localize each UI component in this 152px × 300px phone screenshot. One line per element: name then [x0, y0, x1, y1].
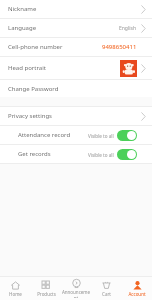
staticText: Announcement — [61, 289, 91, 298]
button[interactable]: Account — [122, 279, 152, 299]
button[interactable]: Announcement — [61, 277, 91, 300]
staticText: Products — [37, 291, 56, 297]
button[interactable]: Products — [31, 279, 61, 299]
button[interactable]: Head portrait — [120, 60, 137, 77]
button[interactable]: Attendance record — [0, 126, 152, 145]
staticText: Account — [128, 291, 146, 297]
staticText: Cart — [102, 291, 111, 297]
button[interactable]: Change Password — [0, 80, 152, 97]
button[interactable]: Toggle visibility — [117, 130, 137, 141]
staticText: Visible to all — [88, 152, 114, 158]
button[interactable]: Cell-phone number — [0, 38, 152, 57]
staticText: Nickname — [8, 5, 37, 13]
button[interactable]: Cart — [91, 279, 121, 299]
button[interactable]: Toggle visibility — [117, 149, 137, 160]
staticText: Cell-phone number — [8, 43, 63, 51]
button[interactable]: Language — [0, 19, 152, 38]
staticText: Home — [9, 291, 22, 297]
button[interactable]: Nickname — [0, 0, 152, 19]
staticText: Change Password — [8, 85, 59, 93]
staticText: English — [119, 25, 137, 32]
staticText: Language — [8, 24, 37, 32]
button[interactable]: Home — [0, 279, 30, 299]
staticText: Attendance record — [18, 131, 71, 139]
button[interactable]: Get records — [0, 145, 152, 164]
staticText: Privacy settings — [8, 112, 52, 120]
staticText: Get records — [18, 150, 51, 158]
staticText: Visible to all — [88, 133, 114, 139]
staticText: 9498650411 — [102, 43, 137, 51]
staticText: Head portrait — [8, 64, 46, 72]
button[interactable]: Privacy settings — [0, 107, 152, 126]
button[interactable]: Head portrait — [0, 57, 152, 80]
